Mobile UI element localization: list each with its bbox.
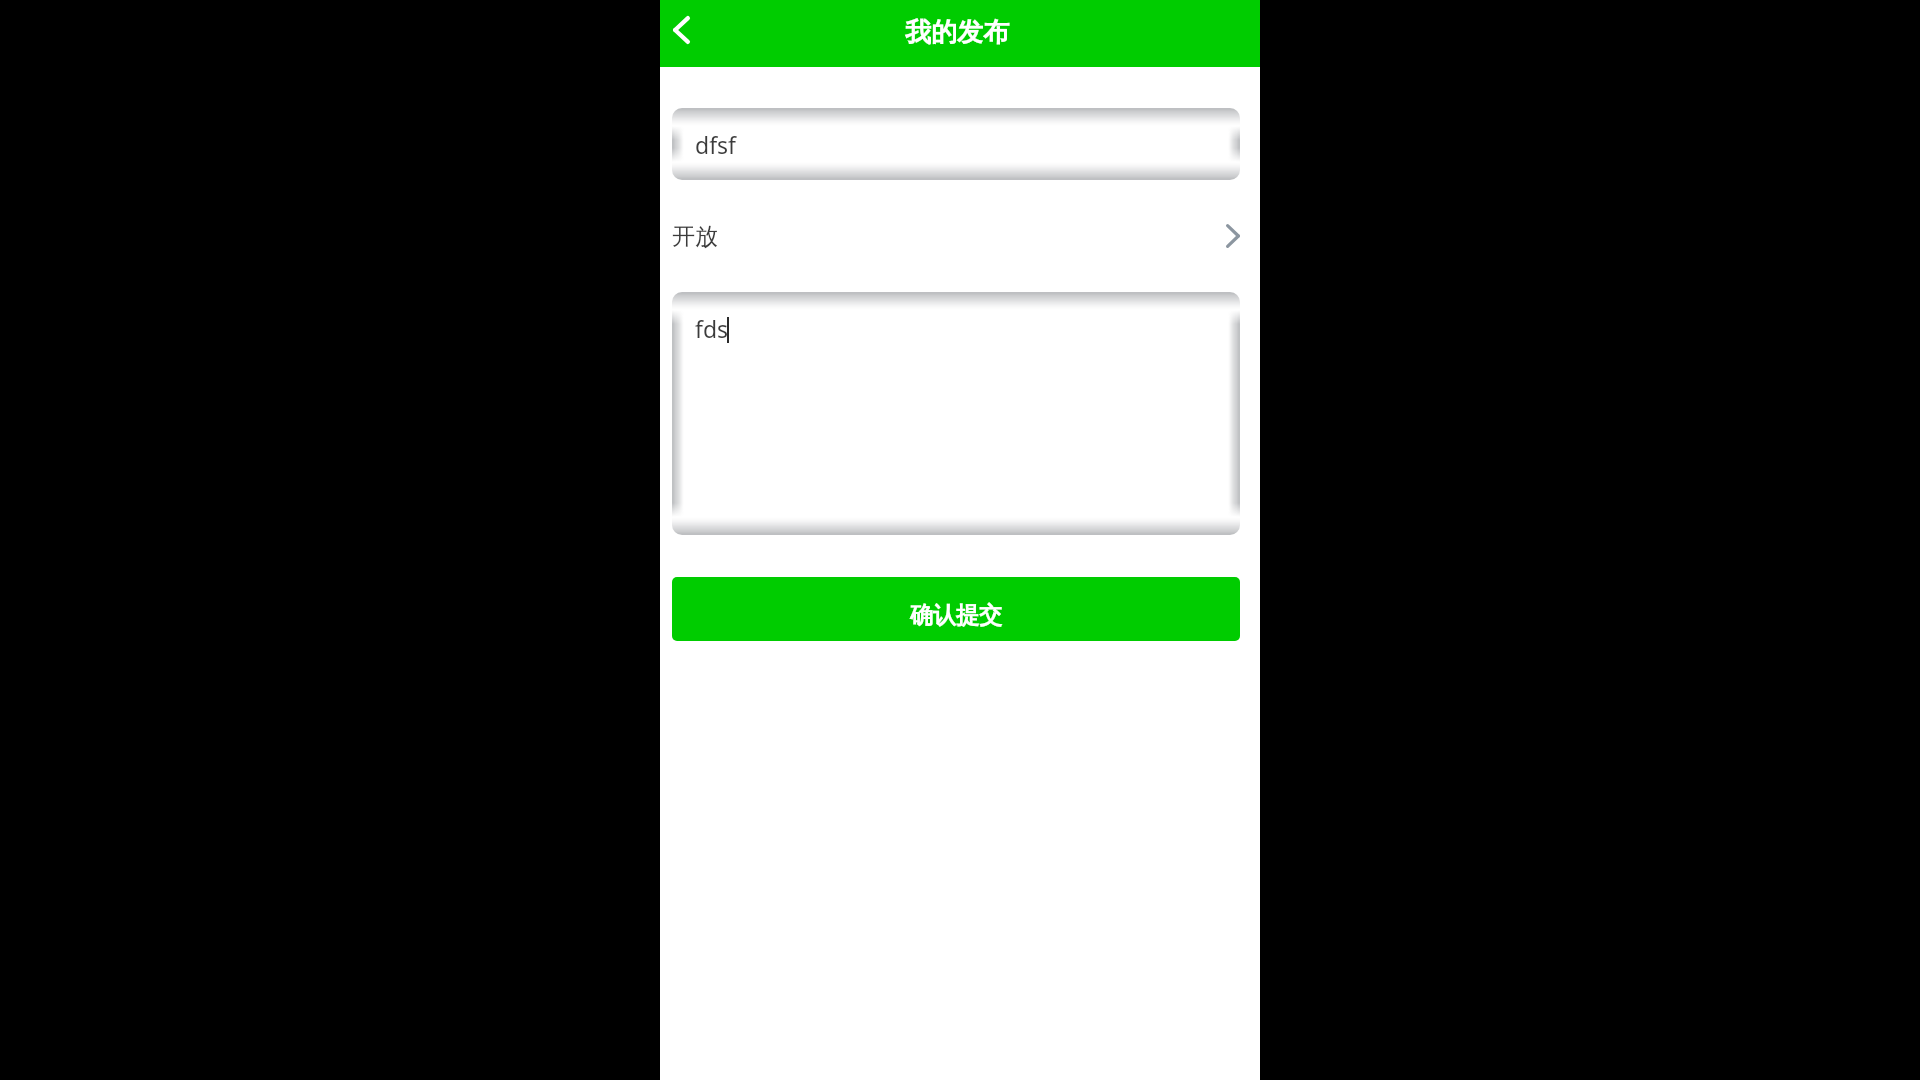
button[interactable]: Back	[660, 0, 706, 67]
button[interactable]: 开放	[660, 180, 1260, 292]
staticText: 我的发布	[905, 16, 1009, 49]
staticText: 开放	[672, 222, 718, 251]
staticText: 确认提交	[910, 601, 1002, 630]
button[interactable]: fds	[672, 292, 1240, 535]
staticText: dfsf	[695, 129, 736, 160]
staticText: fds	[695, 313, 729, 344]
button[interactable]: dfsf	[672, 108, 1240, 180]
button[interactable]: 确认提交	[672, 577, 1240, 641]
